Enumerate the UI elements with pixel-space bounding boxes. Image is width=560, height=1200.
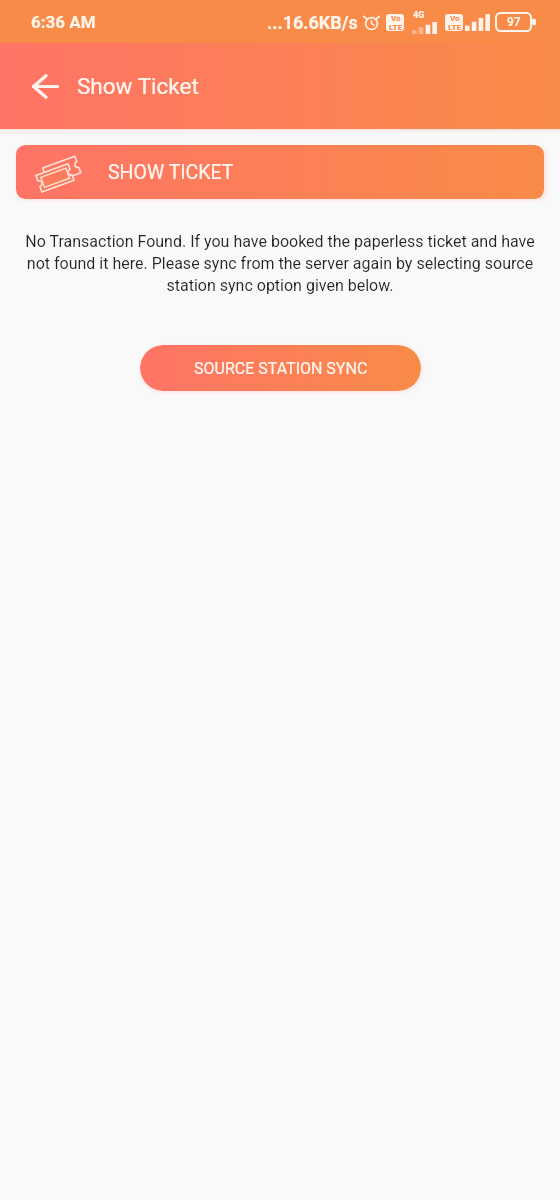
staticText: LTE bbox=[389, 23, 402, 31]
button[interactable]: SHOW TICKET bbox=[16, 145, 544, 199]
staticText: Vo bbox=[450, 14, 460, 23]
button[interactable]: Back bbox=[24, 65, 66, 107]
staticText: SHOW TICKET bbox=[108, 161, 234, 184]
staticText: 4G bbox=[413, 10, 425, 21]
staticText: LTE bbox=[448, 23, 461, 31]
staticText: ...16.6KB/s bbox=[267, 12, 358, 33]
button[interactable]: SOURCE STATION SYNC bbox=[140, 345, 421, 391]
staticText: SOURCE STATION SYNC bbox=[194, 359, 368, 378]
staticText: No Transaction Found. If you have booked… bbox=[23, 232, 537, 294]
staticText: Show Ticket bbox=[77, 73, 199, 99]
staticText: 97 bbox=[507, 15, 521, 29]
staticText: 6:36 AM bbox=[31, 12, 96, 32]
staticText: Vo bbox=[391, 14, 401, 23]
